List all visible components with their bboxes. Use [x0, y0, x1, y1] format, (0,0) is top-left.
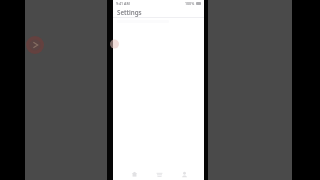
button[interactable]: Library: [152, 168, 166, 180]
staticText: 100%: [185, 1, 195, 6]
staticText: 9:41 AM: [116, 1, 130, 6]
button[interactable]: Profile: [177, 168, 191, 180]
staticText: Settings: [117, 8, 142, 16]
button[interactable]: Home: [127, 168, 141, 180]
